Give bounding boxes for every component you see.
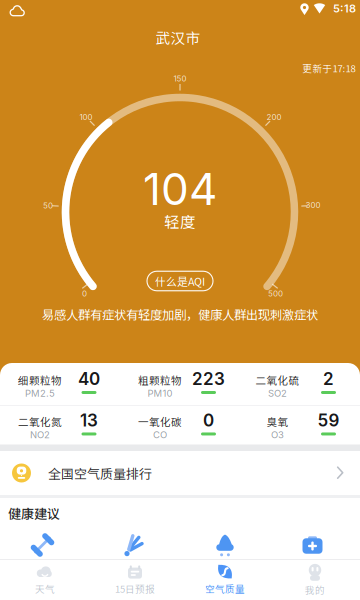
staticText: 104 xyxy=(143,162,217,216)
staticText: CO xyxy=(153,429,167,440)
staticText: 细颗粒物 xyxy=(18,372,62,387)
staticText: 59 xyxy=(317,410,339,430)
staticText: 什么是AQI xyxy=(155,273,205,289)
staticText: O3 xyxy=(271,429,284,440)
staticText: 100 xyxy=(79,112,92,122)
staticText: 健康建议 xyxy=(8,504,60,522)
staticText: 50 xyxy=(43,201,53,210)
staticText: 空气质量 xyxy=(205,582,245,595)
button[interactable]: 空气质量 xyxy=(180,559,269,599)
button[interactable]: 户外活动建议 xyxy=(119,530,149,560)
staticText: 40 xyxy=(78,368,100,389)
staticText: 臭氧 xyxy=(266,414,288,429)
staticText: 二氧化硫 xyxy=(255,372,299,387)
staticText: 300 xyxy=(305,200,320,210)
staticText: 更新于17:18 xyxy=(302,61,355,75)
staticText: 150 xyxy=(173,74,186,83)
button[interactable]: 什么是AQI xyxy=(147,271,213,291)
button[interactable]: 天气 xyxy=(0,559,89,599)
staticText: PM10 xyxy=(147,387,172,399)
staticText: 我的 xyxy=(305,583,325,596)
staticText: 500 xyxy=(268,289,283,298)
staticText: 223 xyxy=(192,368,225,389)
staticText: 200 xyxy=(266,112,281,122)
staticText: 5:18 xyxy=(333,2,356,15)
staticText: NO2 xyxy=(30,429,50,440)
staticText: 0 xyxy=(203,410,214,430)
button[interactable]: 呼吸防护建议 xyxy=(210,530,240,560)
staticText: 一氧化碳 xyxy=(138,414,182,429)
staticText: 天气 xyxy=(35,582,55,595)
staticText: 0 xyxy=(82,289,87,298)
staticText: 二氧化氮 xyxy=(18,414,62,429)
staticText: PM2.5 xyxy=(25,387,55,399)
button[interactable]: 全国空气质量排行 xyxy=(0,451,360,495)
staticText: 全国空气质量排行 xyxy=(48,464,152,482)
staticText: 武汉市 xyxy=(155,27,200,48)
button[interactable]: 运动建议 xyxy=(27,530,57,560)
staticText: 13 xyxy=(80,410,98,430)
button[interactable]: 15日预报 xyxy=(90,559,179,599)
staticText: 2 xyxy=(323,368,334,389)
button[interactable]: 我的 xyxy=(270,559,359,599)
staticText: 粗颗粒物 xyxy=(138,372,182,387)
staticText: 15日预报 xyxy=(115,582,155,595)
button[interactable]: 健康防护建议 xyxy=(297,530,327,560)
staticText: SO2 xyxy=(268,387,287,399)
staticText: 轻度 xyxy=(164,210,196,232)
staticText: 易感人群有症状有轻度加剧，健康人群出现刺激症状 xyxy=(42,305,318,323)
